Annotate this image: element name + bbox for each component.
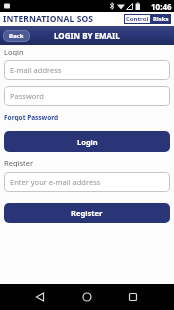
button[interactable]: E-mail address [4, 60, 170, 80]
staticText: Register [4, 158, 34, 167]
staticText: Password [10, 91, 44, 101]
button[interactable]: Enter your e-mail address [4, 172, 170, 192]
button[interactable]: Login [4, 131, 170, 152]
staticText: Control [126, 15, 149, 23]
button[interactable]: Forgot Password [4, 113, 59, 121]
button[interactable]: Register [4, 203, 170, 223]
staticText: Login [77, 137, 98, 147]
staticText: Register [71, 208, 103, 218]
staticText: Forgot Password [4, 113, 59, 121]
button[interactable]: Password [4, 86, 170, 106]
staticText: LOGIN BY EMAIL [54, 30, 120, 41]
staticText: Risks [153, 15, 169, 23]
staticText: Enter your e-mail address [10, 177, 101, 187]
staticText: E-mail address [10, 65, 62, 75]
staticText: INTERNATIONAL SOS [3, 13, 94, 25]
staticText: Login [4, 47, 24, 56]
staticText: 10:46 [151, 1, 172, 12]
button[interactable]: Back [3, 30, 30, 42]
staticText: Back [9, 32, 24, 40]
button[interactable] [0, 284, 174, 310]
